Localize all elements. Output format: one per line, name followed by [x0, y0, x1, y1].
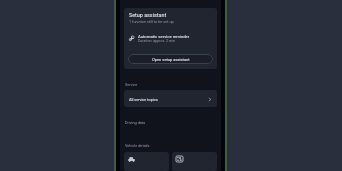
button[interactable]: Open setup assistant — [128, 54, 213, 64]
button[interactable]: Vehicle status — [172, 152, 217, 171]
staticText: Open setup assistant — [152, 57, 190, 62]
staticText: Duration: approx. 2 min — [138, 39, 176, 43]
staticText: Automatic service reminder — [138, 34, 190, 39]
staticText: Driving data — [125, 120, 146, 124]
staticText: Vehicle details — [125, 143, 150, 147]
other: Service reminder — [128, 35, 135, 42]
other: Vehicle status — [176, 156, 183, 162]
staticText: Setup assistant — [129, 12, 167, 18]
button[interactable]: Vehicle — [124, 152, 169, 171]
staticText: All service topics — [129, 97, 158, 101]
staticText: 1 function still to be set up — [129, 19, 174, 23]
button[interactable]: Setup assistant — [124, 8, 217, 69]
other: Vehicle — [128, 157, 135, 162]
button[interactable]: All service topics — [124, 90, 217, 107]
staticText: Service — [125, 82, 138, 86]
